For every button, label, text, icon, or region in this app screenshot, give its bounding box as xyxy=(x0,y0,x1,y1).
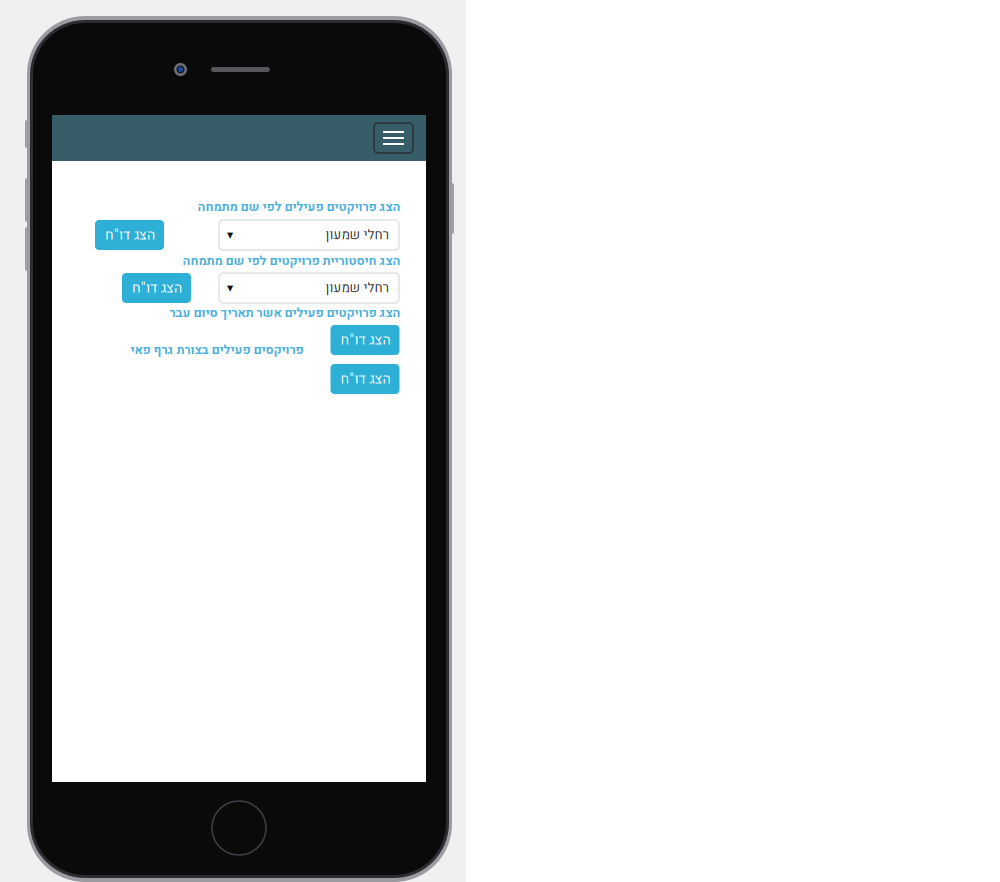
button[interactable]: הצג דו"ח xyxy=(330,325,399,355)
button[interactable]: Select intern xyxy=(219,273,399,303)
staticText: הצג דו"ח xyxy=(340,369,390,389)
staticText: פרויקסים פעילים בצורת גרף פאי xyxy=(130,341,303,359)
staticText: הצג דו"ח xyxy=(104,225,154,245)
staticText: הצג דו"ח xyxy=(340,330,390,350)
staticText: ▼ xyxy=(227,283,233,293)
staticText: הצג חיסטוריית פרויקטים לפי שם מתמחה xyxy=(182,252,400,270)
staticText: הצג פרויקטים פעילים אשר תאריך סיום עבר xyxy=(169,304,400,322)
staticText: רחלי שמעון xyxy=(325,225,389,245)
staticText: הצג פרויקטים פעילים לפי שם מתמחה xyxy=(197,198,400,216)
staticText: הצג דו"ח xyxy=(131,278,181,298)
staticText: ▼ xyxy=(227,230,233,240)
button[interactable]: הצג דו"ח xyxy=(122,273,191,303)
button[interactable]: הצג דו"ח xyxy=(330,364,399,394)
button[interactable]: הצג דו"ח xyxy=(95,220,164,250)
button[interactable]: Select intern xyxy=(219,220,399,250)
button[interactable]: Toggle navigation xyxy=(374,123,413,153)
staticText: רחלי שמעון xyxy=(325,278,389,298)
